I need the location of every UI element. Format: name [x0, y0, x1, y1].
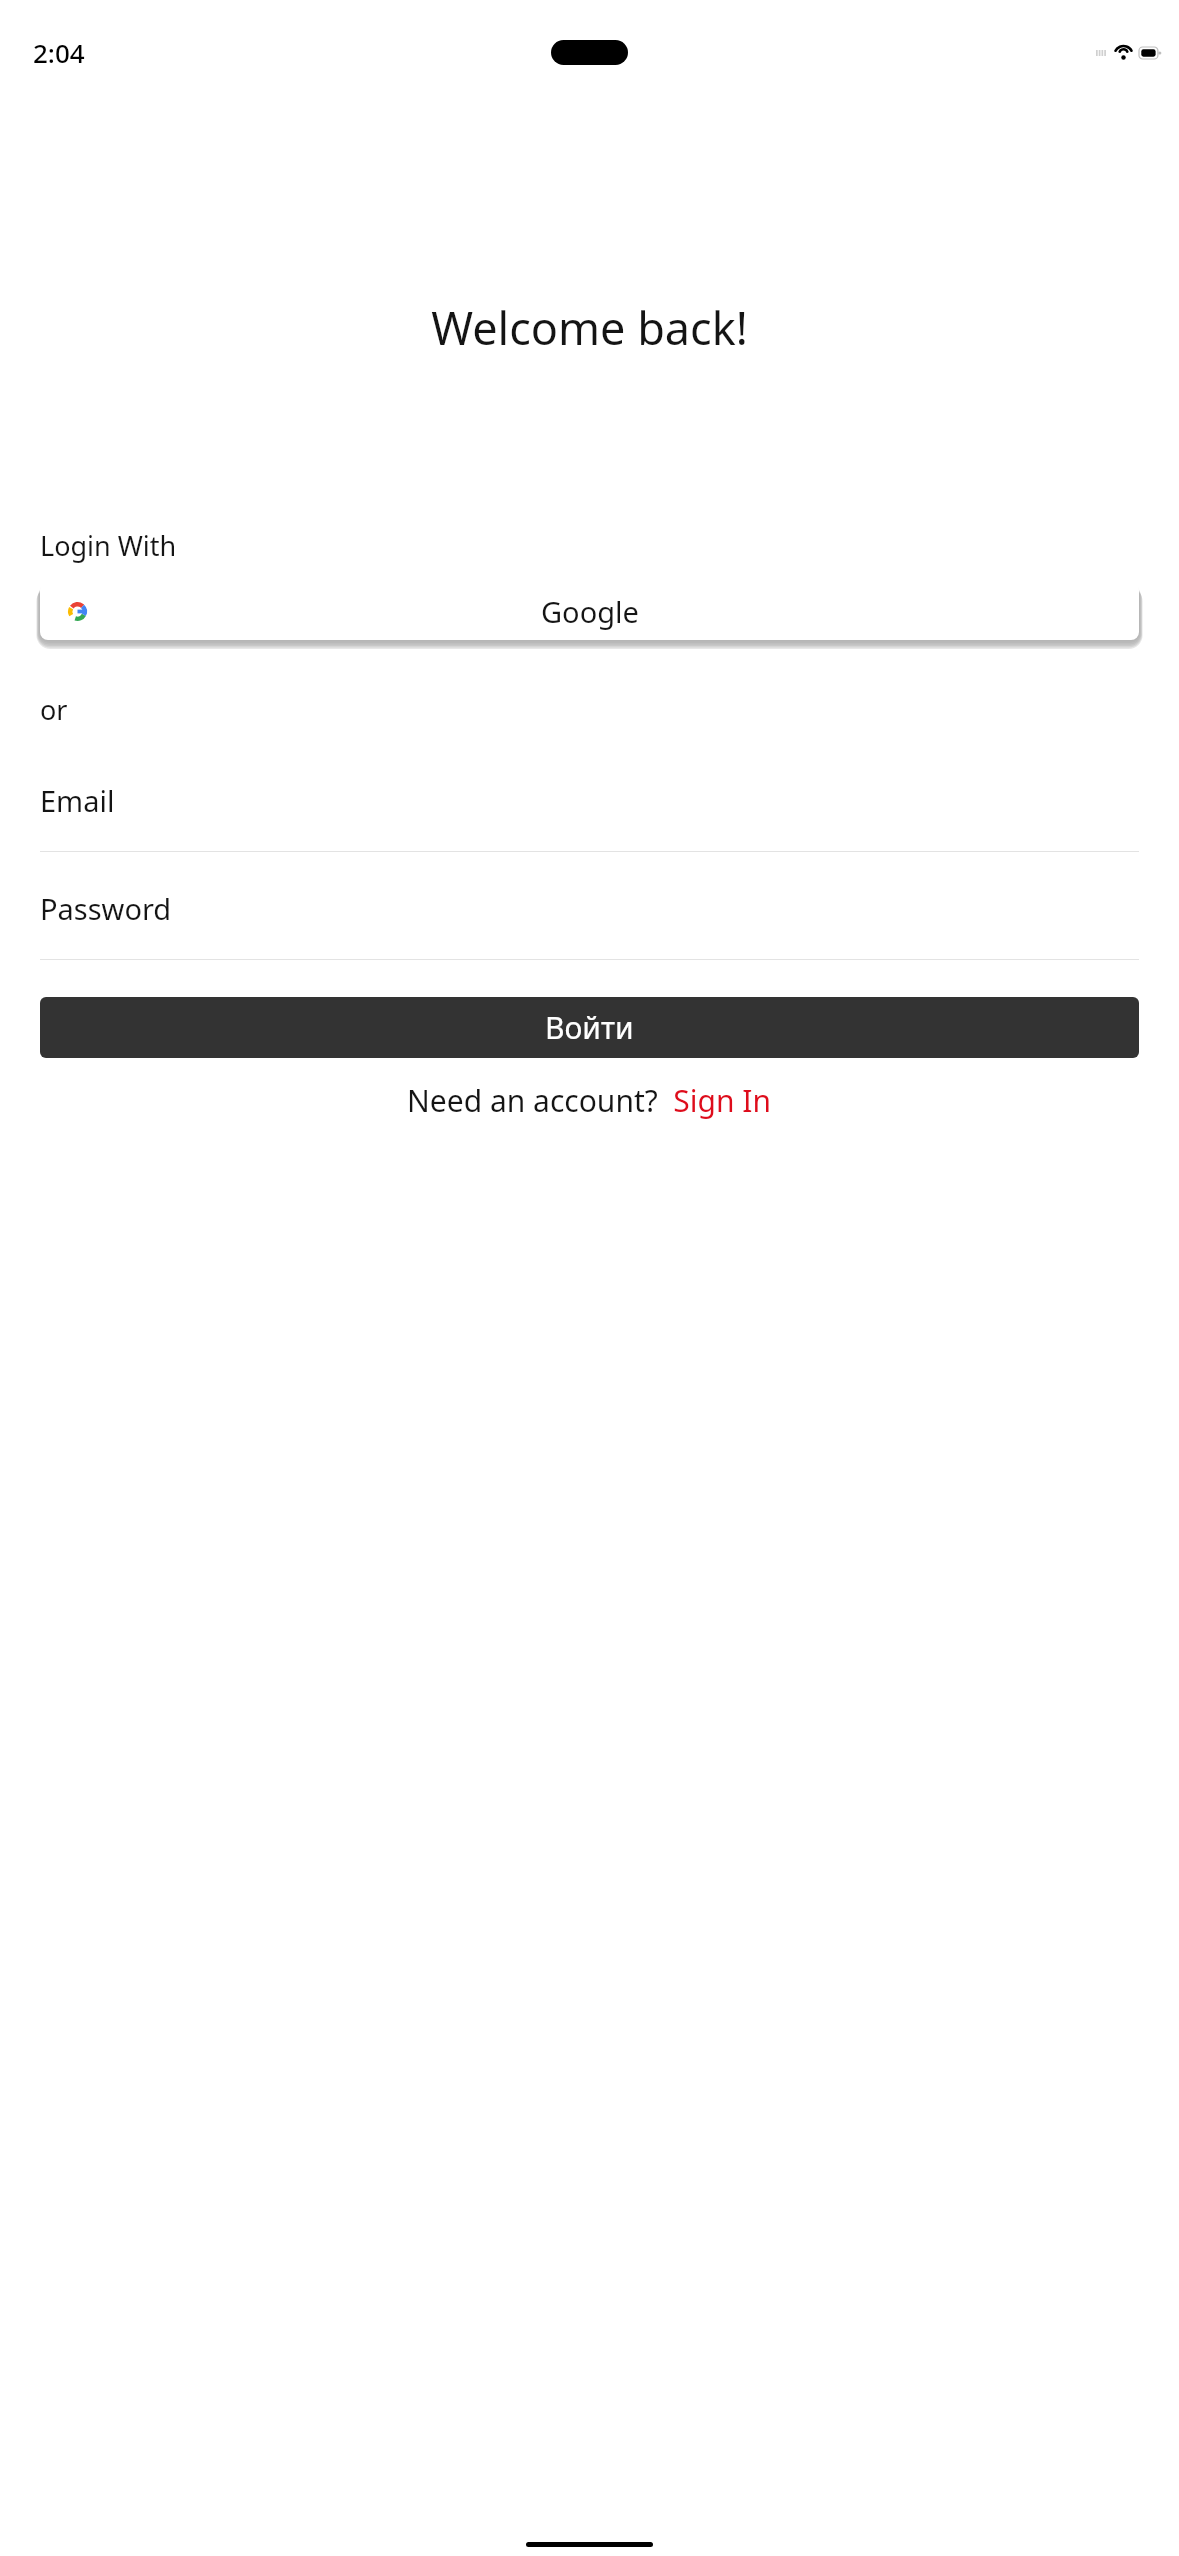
staticText: Email — [40, 781, 115, 820]
staticText: Need an account? Sign In — [407, 1080, 772, 1121]
staticText: Welcome back! — [0, 297, 1179, 358]
staticText: 2:04 — [33, 35, 85, 70]
button[interactable]: Need an account? Sign In — [407, 1080, 772, 1121]
staticText: Google — [541, 592, 639, 631]
button[interactable]: Google — [40, 582, 1139, 640]
button[interactable]: Password — [40, 889, 1139, 960]
staticText: or — [40, 691, 68, 728]
staticText: Password — [40, 889, 172, 928]
button[interactable]: Войти — [40, 997, 1139, 1058]
button[interactable]: Email — [40, 781, 1139, 852]
staticText: Войти — [545, 1007, 634, 1048]
staticText: Login With — [40, 527, 177, 564]
